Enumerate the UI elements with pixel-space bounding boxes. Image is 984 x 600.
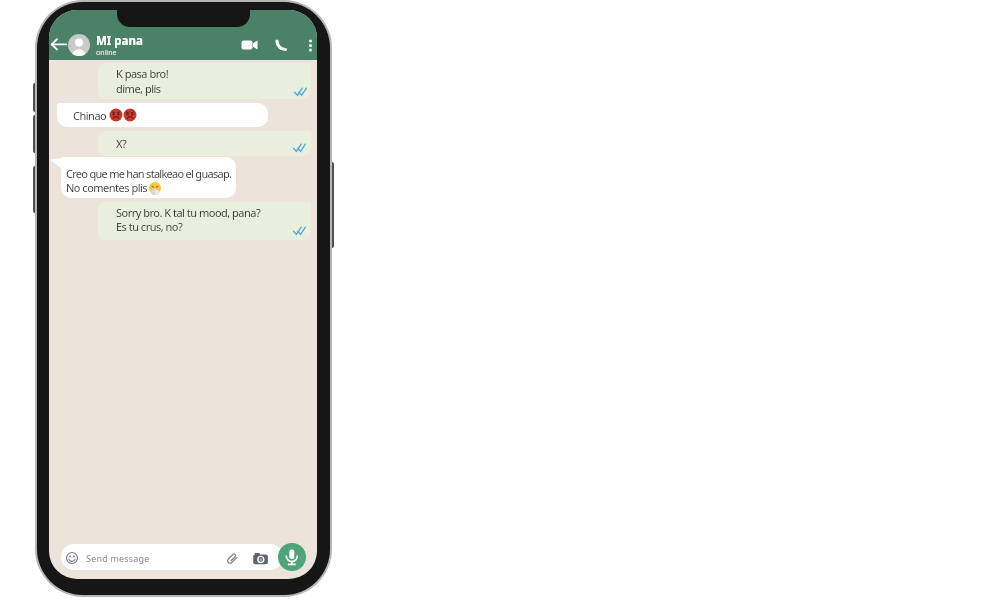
staticText: X?	[116, 136, 127, 151]
staticText: Creo que me han stalkeao el guasap.	[66, 166, 232, 181]
staticText: Sorry bro. K tal tu mood, pana?	[116, 205, 261, 220]
staticText: Chinao	[73, 108, 107, 123]
staticText: MI pana	[96, 33, 143, 49]
button[interactable]	[278, 543, 306, 571]
staticText: Send message	[86, 552, 150, 564]
staticText: No comentes plis	[66, 180, 148, 195]
button[interactable]	[50, 36, 68, 54]
button[interactable]	[305, 36, 316, 55]
button[interactable]	[68, 34, 90, 56]
button[interactable]	[240, 37, 259, 53]
button[interactable]	[61, 544, 283, 570]
staticText: Es tu crus, no?	[116, 219, 183, 234]
staticText: online	[96, 48, 117, 58]
staticText: dime, plis	[116, 81, 161, 96]
button[interactable]	[275, 37, 289, 51]
staticText: K pasa bro!	[116, 66, 169, 81]
